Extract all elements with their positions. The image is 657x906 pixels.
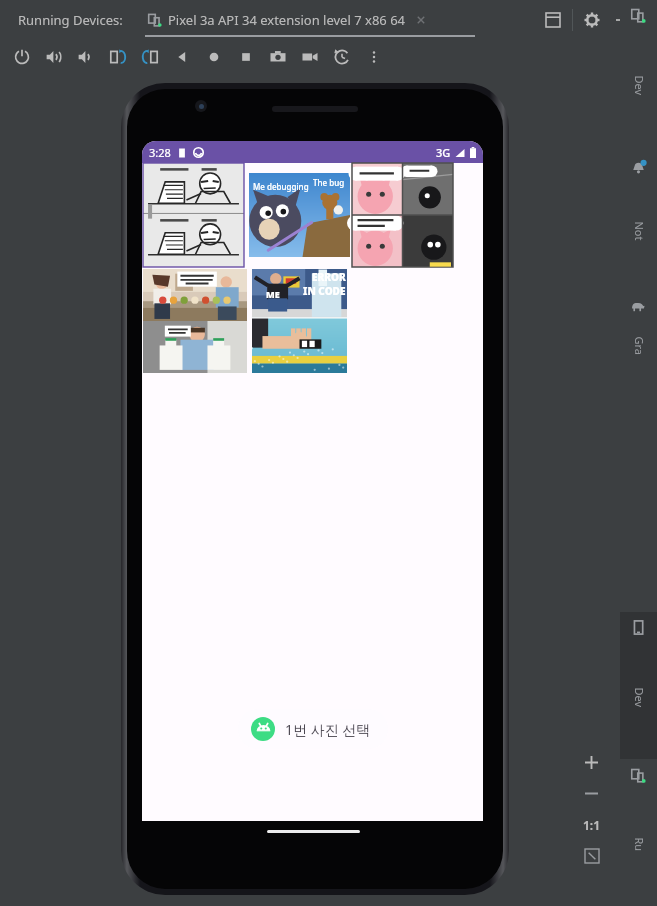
button[interactable] (143, 163, 244, 267)
button[interactable]: Zoom out (576, 778, 607, 809)
button[interactable]: Zoom in (576, 747, 607, 778)
button[interactable]: Settings (581, 9, 603, 31)
staticText: Pixel 3a API 34 extension level 7 x86 64 (168, 11, 406, 29)
staticText: Device Explorer (631, 687, 646, 707)
button[interactable]: Device Manager (620, 0, 657, 147)
button[interactable]: Split window (542, 9, 564, 31)
button[interactable]: Volume down (70, 41, 102, 72)
button[interactable]: Power (6, 41, 38, 72)
button[interactable]: 1번 사진 선택 (238, 709, 388, 749)
button[interactable]: Notifications (620, 152, 657, 287)
staticText: Device Manager (631, 75, 646, 95)
button[interactable]: Gradle (620, 290, 657, 379)
button[interactable]: Running Devices (620, 760, 657, 906)
staticText: 1:1 (583, 817, 601, 833)
button[interactable]: Device Explorer (620, 612, 657, 759)
staticText: ME (266, 288, 280, 300)
button[interactable]: Minimize (611, 9, 633, 31)
staticText: The bug (313, 177, 345, 188)
button[interactable]: Volume up (38, 41, 70, 72)
button[interactable]: Record screen (294, 41, 326, 72)
button[interactable]: Me debugging (249, 173, 350, 257)
button[interactable]: 1:1 (576, 809, 607, 840)
button[interactable]: Screenshot (262, 41, 294, 72)
button[interactable]: Close tab (414, 13, 428, 27)
staticText: Me debugging (253, 181, 309, 192)
staticText: Gradle (631, 336, 646, 356)
staticText: 3G (436, 145, 451, 160)
button[interactable]: Home (198, 41, 230, 72)
button[interactable]: History (326, 41, 358, 72)
staticText: ERROR (312, 270, 346, 284)
button[interactable] (143, 269, 247, 373)
button[interactable]: Zoom to fit (576, 840, 607, 871)
button[interactable] (352, 163, 453, 267)
staticText: 1번 사진 선택 (285, 720, 371, 739)
button[interactable]: Recents (230, 41, 262, 72)
staticText: Running Devices (631, 837, 646, 857)
button[interactable]: Pixel 3a API 34 extension level 7 x86 64 (148, 11, 428, 29)
staticText: Running Devices: (18, 11, 123, 29)
button[interactable]: ERROR (252, 269, 347, 373)
staticText: IN CODE (303, 284, 346, 298)
staticText: 3:28 (149, 145, 171, 160)
button[interactable]: More (358, 41, 390, 72)
button[interactable]: Rotate right (134, 41, 166, 72)
staticText: Notifications (631, 221, 646, 241)
button[interactable]: Rotate left (102, 41, 134, 72)
button[interactable]: Back (166, 41, 198, 72)
